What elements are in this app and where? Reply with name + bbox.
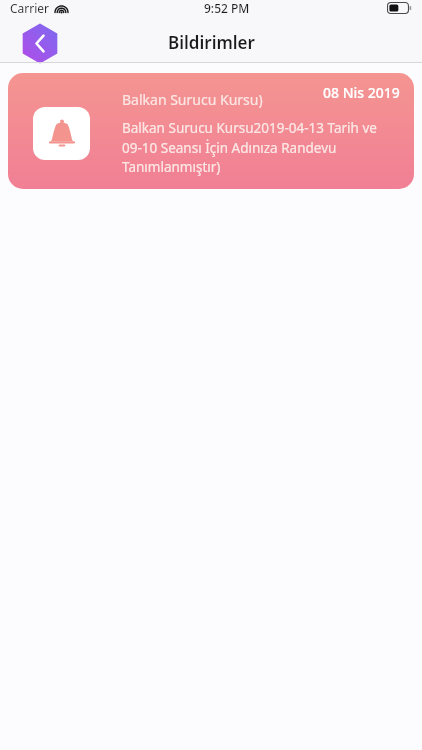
staticText: 9:52 PM <box>204 0 250 16</box>
staticText: Carrier <box>10 0 50 16</box>
staticText: Balkan Surucu Kursu) <box>122 90 263 109</box>
staticText: Bildirimler <box>168 31 255 54</box>
staticText: 08 Nis 2019 <box>323 83 400 102</box>
button[interactable]: Back <box>19 24 61 63</box>
button[interactable]: 08 Nis 2019 <box>8 73 414 189</box>
staticText: Balkan Surucu Kursu2019-04-13 Tarih ve 0… <box>122 119 400 176</box>
